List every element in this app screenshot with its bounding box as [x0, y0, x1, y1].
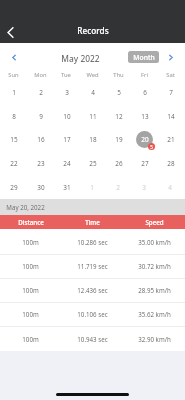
staticText: 10: [63, 112, 71, 121]
button[interactable]: 17: [56, 129, 77, 150]
button[interactable]: 23: [30, 153, 51, 174]
staticText: 20: [141, 135, 149, 144]
staticText: 18: [89, 135, 97, 144]
staticText: Mon: [34, 71, 47, 79]
staticText: 15: [10, 135, 18, 144]
staticText: 5: [117, 88, 121, 97]
staticText: 35.00 km/h: [138, 238, 171, 246]
staticText: 22: [10, 159, 18, 168]
staticText: 100m: [22, 262, 39, 270]
button[interactable]: 7: [160, 82, 181, 103]
button[interactable]: 100m: [0, 278, 185, 302]
button[interactable]: 27: [134, 153, 155, 174]
staticText: 6: [143, 88, 147, 97]
button[interactable]: 29: [3, 177, 24, 198]
staticText: 16: [37, 135, 45, 144]
button[interactable]: 31: [56, 177, 77, 198]
staticText: 10.106 sec: [77, 310, 108, 318]
staticText: Fri: [141, 71, 148, 79]
staticText: 17: [63, 135, 71, 144]
button[interactable]: 9: [30, 106, 51, 127]
staticText: 100m: [22, 310, 39, 318]
staticText: 23: [37, 159, 45, 168]
button[interactable]: 1: [3, 82, 24, 103]
button[interactable]: 15: [3, 129, 24, 150]
staticText: 14: [167, 112, 175, 121]
staticText: Records: [77, 25, 109, 36]
button[interactable]: 19: [108, 129, 129, 150]
button[interactable]: 16: [30, 129, 51, 150]
staticText: 100m: [22, 238, 39, 246]
staticText: 35.62 km/h: [138, 310, 171, 318]
button[interactable]: 6: [134, 82, 155, 103]
button[interactable]: Back: [0, 21, 21, 43]
button[interactable]: 12: [108, 106, 129, 127]
button[interactable]: 25: [82, 153, 103, 174]
staticText: 1: [90, 183, 94, 192]
staticText: Speed: [145, 218, 164, 226]
button[interactable]: 100m: [0, 254, 185, 278]
staticText: Tue: [61, 71, 71, 79]
button[interactable]: 20: [134, 129, 155, 150]
staticText: 24: [63, 159, 71, 168]
staticText: May 2022: [61, 53, 100, 64]
staticText: 26: [115, 159, 123, 168]
button[interactable]: 24: [56, 153, 77, 174]
staticText: 3: [65, 88, 69, 97]
button[interactable]: 22: [3, 153, 24, 174]
button[interactable]: 30: [30, 177, 51, 198]
button[interactable]: 28: [160, 153, 181, 174]
button[interactable]: 8: [3, 106, 24, 127]
button[interactable]: Previous month: [5, 48, 23, 66]
staticText: 2: [116, 183, 120, 192]
staticText: 11.719 sec: [77, 262, 108, 270]
staticText: 10.943 sec: [77, 335, 108, 343]
button[interactable]: 18: [82, 129, 103, 150]
button[interactable]: 100m: [0, 302, 185, 326]
button[interactable]: 21: [160, 129, 181, 150]
staticText: Thu: [113, 71, 124, 79]
staticText: 7: [169, 88, 173, 97]
staticText: 8: [12, 112, 16, 121]
button[interactable]: 100m: [0, 326, 185, 351]
staticText: 100m: [22, 286, 39, 294]
button[interactable]: Month: [128, 51, 159, 63]
button[interactable]: 11: [82, 106, 103, 127]
button[interactable]: 2: [30, 82, 51, 103]
staticText: 9: [39, 112, 43, 121]
staticText: 100m: [22, 335, 39, 343]
staticText: 27: [141, 159, 149, 168]
staticText: 29: [10, 183, 18, 192]
staticText: Time: [85, 218, 100, 226]
staticText: 30: [37, 183, 45, 192]
staticText: Month: [133, 53, 155, 62]
staticText: 1: [12, 88, 16, 97]
staticText: 2: [39, 88, 43, 97]
staticText: Wed: [86, 71, 99, 79]
button[interactable]: 4: [82, 82, 103, 103]
staticText: 5: [150, 144, 153, 150]
staticText: 13: [141, 112, 149, 121]
staticText: 3: [142, 183, 146, 192]
staticText: 31: [63, 183, 71, 192]
staticText: 19: [115, 135, 123, 144]
button[interactable]: 10: [56, 106, 77, 127]
button[interactable]: 26: [108, 153, 129, 174]
button[interactable]: Next month: [162, 48, 180, 66]
staticText: 12: [115, 112, 123, 121]
staticText: 28.95 km/h: [138, 286, 171, 294]
button[interactable]: 3: [56, 82, 77, 103]
button[interactable]: 14: [160, 106, 181, 127]
staticText: May 20, 2022: [6, 203, 45, 211]
staticText: 12.436 sec: [77, 286, 108, 294]
staticText: Distance: [18, 218, 44, 226]
staticText: 25: [89, 159, 97, 168]
button[interactable]: 100m: [0, 229, 185, 254]
button[interactable]: 5: [108, 82, 129, 103]
staticText: Sun: [8, 71, 19, 79]
staticText: 21: [167, 135, 175, 144]
staticText: 32.90 km/h: [138, 335, 171, 343]
button[interactable]: 13: [134, 106, 155, 127]
staticText: 30.72 km/h: [138, 262, 171, 270]
staticText: Sat: [166, 71, 175, 79]
